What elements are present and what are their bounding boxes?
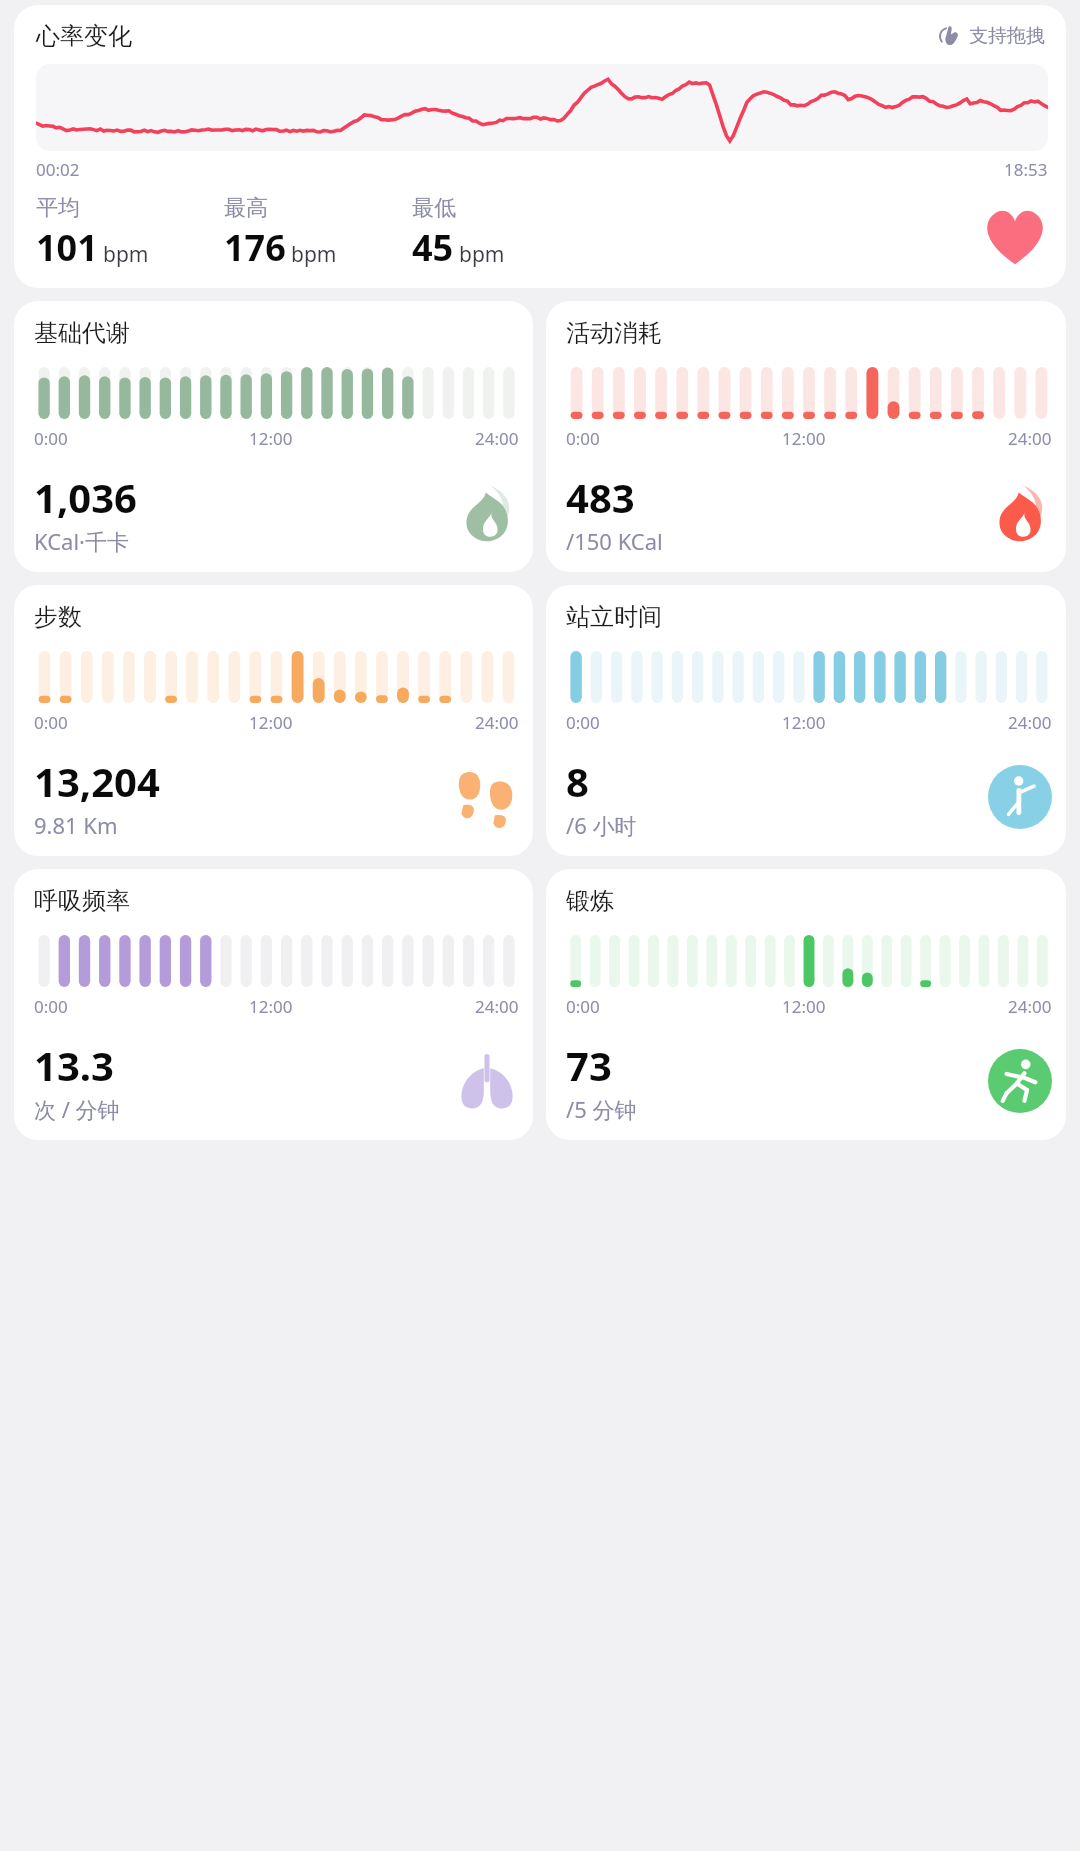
staticText: 次 / 分钟 [34, 1094, 120, 1124]
staticText: 18:53 [1004, 158, 1048, 181]
staticText: 最高 [224, 194, 268, 222]
staticText: 呼吸频率 [34, 886, 130, 916]
staticText: 176 [224, 223, 286, 272]
staticText: 0:00 [34, 427, 68, 450]
staticText: 最低 [412, 194, 456, 222]
staticText: 站立时间 [566, 602, 662, 632]
staticText: 活动消耗 [566, 318, 662, 348]
button[interactable]: 心率变化 [14, 5, 1066, 288]
staticText: 8 [566, 754, 589, 808]
staticText: 00:02 [36, 158, 80, 181]
staticText: bpm [459, 240, 505, 269]
other: 卡路里 [988, 481, 1052, 545]
staticText: 24:00 [1008, 427, 1052, 450]
button[interactable]: 呼吸频率 [14, 869, 533, 1140]
button[interactable]: 活动消耗 [546, 301, 1066, 572]
staticText: 24:00 [475, 711, 519, 734]
button[interactable]: 锻炼 [546, 869, 1066, 1140]
staticText: 24:00 [475, 995, 519, 1018]
staticText: /6 小时 [566, 810, 637, 840]
other: 站立时间 [988, 765, 1052, 829]
staticText: 12:00 [249, 427, 293, 450]
button[interactable]: 基础代谢 [14, 301, 533, 572]
staticText: 24:00 [475, 427, 519, 450]
other: 锻炼 [988, 1049, 1052, 1113]
staticText: 73 [566, 1038, 612, 1092]
staticText: 9.81 Km [34, 810, 118, 840]
staticText: bpm [291, 240, 337, 269]
staticText: 锻炼 [566, 886, 614, 916]
staticText: 12:00 [782, 711, 826, 734]
other: 支持拖拽 [937, 24, 961, 48]
staticText: 0:00 [566, 995, 600, 1018]
staticText: 基础代谢 [34, 318, 130, 348]
other: 心率 [982, 206, 1048, 268]
other: 呼吸频率 [455, 1049, 519, 1113]
staticText: 12:00 [249, 711, 293, 734]
staticText: 0:00 [34, 711, 68, 734]
staticText: 483 [566, 470, 635, 524]
staticText: 13,204 [34, 754, 160, 808]
staticText: 0:00 [34, 995, 68, 1018]
staticText: 12:00 [249, 995, 293, 1018]
staticText: 13.3 [34, 1038, 114, 1092]
staticText: bpm [103, 240, 149, 269]
staticText: 24:00 [1008, 995, 1052, 1018]
staticText: 1,036 [34, 470, 137, 524]
staticText: 101 [36, 223, 98, 272]
other: 步数 [455, 765, 519, 829]
button[interactable]: 站立时间 [546, 585, 1066, 856]
staticText: /150 KCal [566, 526, 663, 556]
staticText: 心率变化 [36, 21, 132, 51]
staticText: 0:00 [566, 711, 600, 734]
button[interactable]: 支持拖拽 [934, 21, 1048, 51]
other: 卡路里 [455, 481, 519, 545]
staticText: 0:00 [566, 427, 600, 450]
staticText: 12:00 [782, 995, 826, 1018]
staticText: 24:00 [1008, 711, 1052, 734]
staticText: /5 分钟 [566, 1094, 637, 1124]
staticText: 12:00 [782, 427, 826, 450]
button[interactable]: 步数 [14, 585, 533, 856]
staticText: 支持拖拽 [969, 24, 1045, 48]
staticText: 45 [412, 223, 454, 272]
staticText: 平均 [36, 194, 80, 222]
staticText: 步数 [34, 602, 82, 632]
staticText: KCal·千卡 [34, 526, 129, 556]
